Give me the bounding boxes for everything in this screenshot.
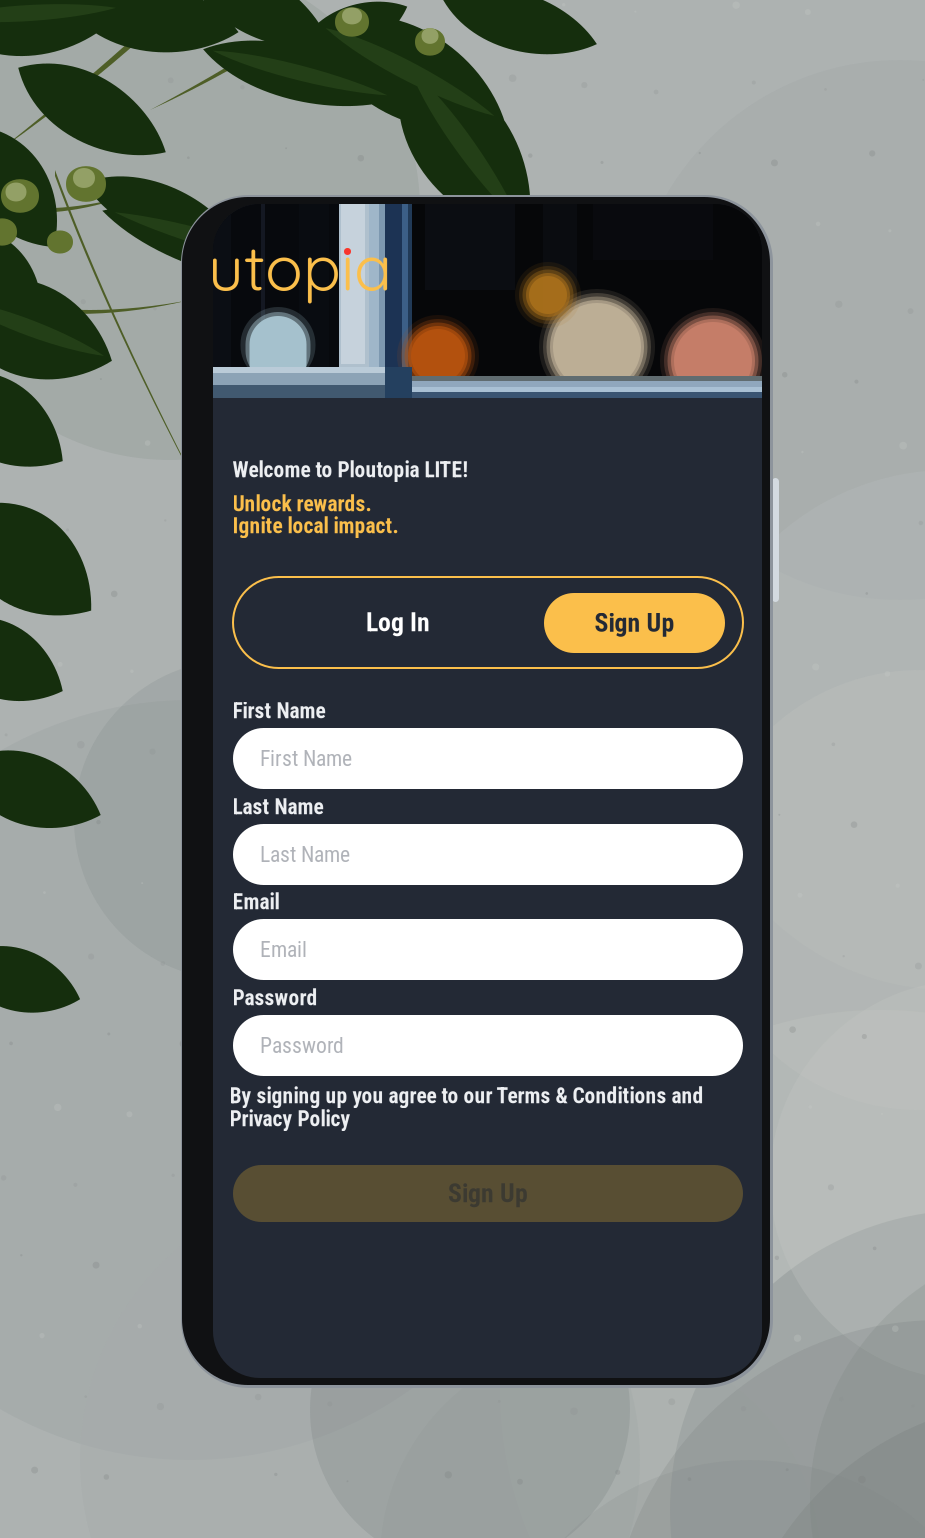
staticText: Ignite local impact. (232, 513, 398, 539)
staticText: Password (232, 985, 317, 1011)
staticText: Email (260, 937, 307, 962)
staticText: Password (260, 1033, 344, 1058)
button[interactable]: Email (233, 919, 743, 980)
staticText: Last Name (260, 842, 350, 867)
button[interactable]: Sign Up (233, 1165, 743, 1222)
staticText: Welcome to Ploutopia LITE! (232, 457, 468, 483)
button[interactable]: Last Name (233, 824, 743, 885)
staticText: Email (232, 889, 279, 915)
staticText: Last Name (232, 794, 323, 820)
staticText: Sign Up (448, 1178, 528, 1209)
staticText: Log In (366, 607, 430, 638)
staticText: By signing up you agree to our Terms & C… (229, 1083, 703, 1109)
button[interactable]: Sign Up (544, 593, 725, 653)
staticText: Unlock rewards. (232, 491, 371, 517)
button[interactable]: Log In (233, 577, 563, 668)
button[interactable]: Password (233, 1015, 743, 1076)
button[interactable]: First Name (233, 728, 743, 789)
staticText: First Name (232, 698, 325, 724)
staticText: Privacy Policy (229, 1106, 350, 1132)
staticText: utopia (208, 228, 392, 306)
staticText: First Name (260, 746, 352, 771)
staticText: Sign Up (594, 608, 674, 638)
